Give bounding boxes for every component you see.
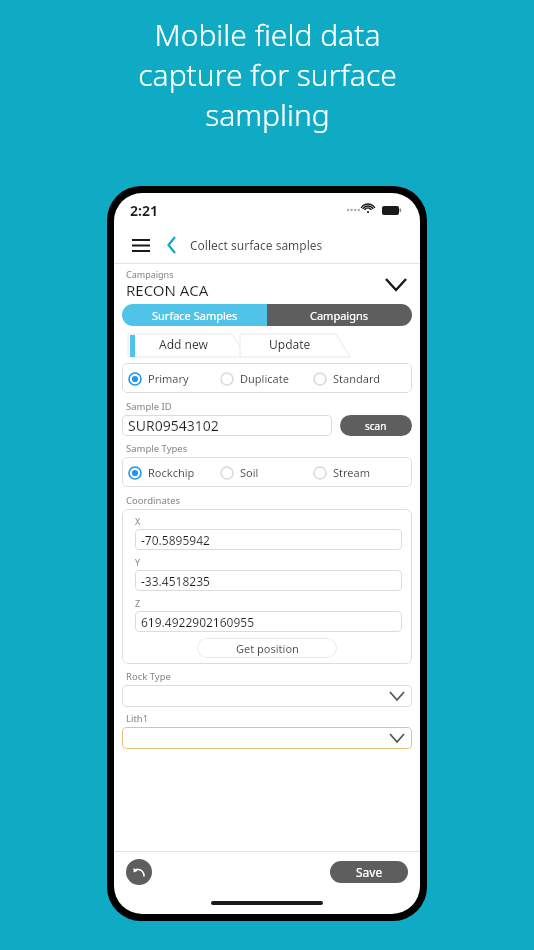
button[interactable]: Campaigns xyxy=(114,264,420,304)
button[interactable]: Duplicate xyxy=(220,371,313,386)
staticText: Standard xyxy=(333,371,381,386)
button[interactable]: Soil xyxy=(220,465,313,480)
staticText: Surface Samples xyxy=(152,308,238,323)
staticText: Sample ID xyxy=(126,400,172,413)
button[interactable]: Rockchip xyxy=(128,465,220,480)
staticText: Add new xyxy=(159,336,208,352)
button[interactable]: Back xyxy=(160,233,184,257)
staticText: 619.4922902160955 xyxy=(141,614,255,630)
staticText: Mobile field data capture for surface sa… xyxy=(138,14,397,135)
button[interactable]: Campaigns xyxy=(267,304,412,326)
staticText: Coordinates xyxy=(126,494,181,507)
button[interactable] xyxy=(122,727,412,749)
button[interactable]: Add new xyxy=(128,331,238,357)
button[interactable]: Update xyxy=(240,331,340,357)
staticText: Collect surface samples xyxy=(190,237,323,253)
staticText: 2:21 xyxy=(130,201,158,220)
staticText: scan xyxy=(365,419,387,433)
button[interactable]: Save xyxy=(330,861,408,883)
button[interactable]: Surface Samples xyxy=(122,304,267,326)
button[interactable]: Get position xyxy=(197,638,337,658)
button[interactable]: Stream xyxy=(313,465,406,480)
button[interactable]: Standard xyxy=(313,371,406,386)
button[interactable]: Menu xyxy=(128,232,154,258)
staticText: Save xyxy=(356,864,383,880)
staticText: -70.5895942 xyxy=(141,532,210,548)
staticText: Soil xyxy=(240,465,259,480)
staticText: -33.4518235 xyxy=(141,573,210,589)
button[interactable]: scan xyxy=(340,415,412,436)
button[interactable]: Primary xyxy=(128,371,220,386)
staticText: Update xyxy=(269,336,311,352)
staticText: Lith1 xyxy=(126,712,149,725)
staticText: Sample Types xyxy=(126,442,188,455)
staticText: Primary xyxy=(148,371,189,386)
staticText: Rockchip xyxy=(148,465,195,480)
staticText: Get position xyxy=(236,641,299,656)
staticText: RECON ACA xyxy=(126,280,209,300)
staticText: SUR09543102 xyxy=(128,416,219,435)
staticText: Campaigns xyxy=(126,268,174,280)
staticText: Duplicate xyxy=(240,371,289,386)
button[interactable]: -70.5895942 xyxy=(135,529,402,550)
button[interactable]: -33.4518235 xyxy=(135,570,402,591)
staticText: Campaigns xyxy=(310,308,369,323)
staticText: Y xyxy=(135,556,141,568)
button[interactable]: 619.4922902160955 xyxy=(135,611,402,632)
staticText: Rock Type xyxy=(126,670,171,683)
staticText: X xyxy=(135,515,141,527)
staticText: Stream xyxy=(333,465,370,480)
button[interactable] xyxy=(122,685,412,707)
button[interactable]: SUR09543102 xyxy=(122,415,332,436)
staticText: Z xyxy=(135,597,141,609)
button[interactable]: Undo xyxy=(126,859,152,885)
